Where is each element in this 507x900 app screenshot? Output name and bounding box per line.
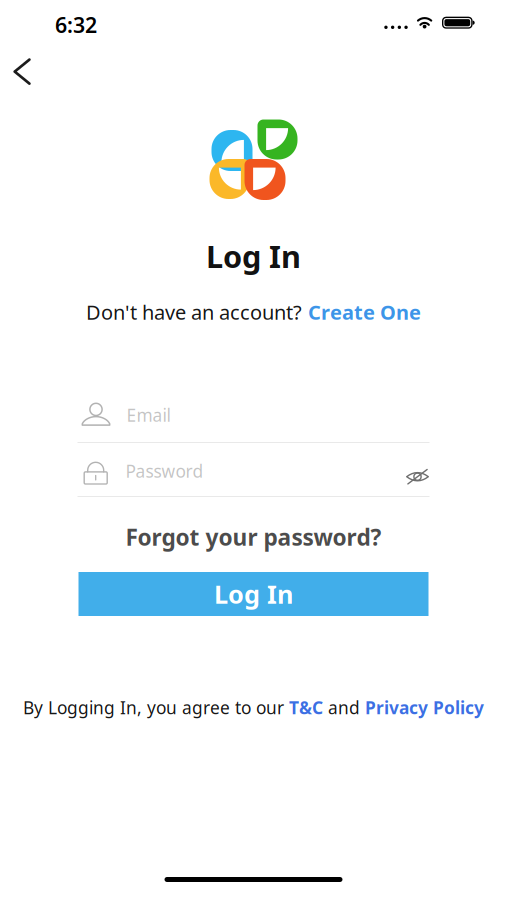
button[interactable]: Log In (78, 572, 428, 616)
staticText: Don't have an account? (86, 299, 302, 325)
button[interactable]: Back (0, 44, 44, 85)
button[interactable]: Create One (308, 299, 421, 325)
staticText: Log In (206, 236, 301, 276)
button[interactable]: Show password (405, 455, 429, 486)
staticText: By Logging In, you agree to our (23, 696, 284, 719)
staticText: Forgot your password? (125, 522, 381, 552)
button[interactable]: Privacy Policy (365, 696, 484, 719)
staticText: and (328, 696, 360, 719)
button[interactable]: T&C (289, 696, 323, 719)
staticText: Privacy Policy (365, 696, 484, 719)
staticText: Password (125, 459, 203, 482)
staticText: Create One (308, 299, 421, 325)
staticText: Email (126, 403, 170, 426)
staticText: Log In (214, 577, 293, 611)
staticText: 6:32 (55, 11, 97, 39)
staticText: T&C (289, 696, 323, 719)
button[interactable]: Forgot your password? (125, 520, 381, 554)
